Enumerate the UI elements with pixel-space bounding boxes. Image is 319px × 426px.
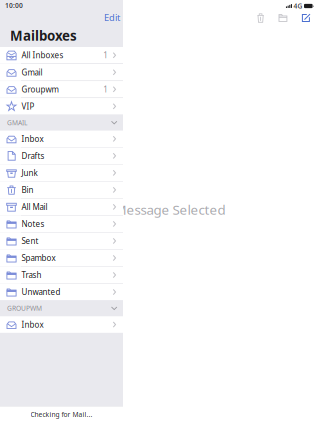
staticText: Drafts	[21, 150, 44, 161]
staticText: Groupwm	[21, 84, 58, 95]
staticText: Notes	[21, 219, 44, 229]
button[interactable]: All Inboxes	[0, 47, 123, 63]
staticText: GROUPWM	[7, 304, 42, 313]
staticText: Inbox	[21, 133, 43, 144]
button[interactable]: Sent	[0, 233, 123, 249]
staticText: Sent	[21, 236, 38, 246]
button[interactable]: Compose	[302, 12, 310, 24]
staticText: 1	[103, 50, 108, 60]
staticText: Spambox	[21, 253, 55, 263]
staticText: Edit	[104, 11, 120, 24]
button[interactable]: Spambox	[0, 250, 123, 266]
staticText: 4G	[293, 2, 302, 10]
button[interactable]: Delete	[257, 11, 264, 25]
staticText: 1	[103, 84, 108, 95]
staticText: No Message Selected	[93, 201, 225, 218]
button[interactable]: Unwanted	[0, 284, 123, 300]
staticText: Junk	[21, 168, 37, 178]
button[interactable]: Bin	[0, 182, 123, 198]
button[interactable]: VIP	[0, 98, 123, 115]
staticText: Inbox	[21, 319, 43, 330]
staticText: Checking for Mail...	[30, 410, 92, 419]
staticText: Bin	[21, 185, 33, 195]
staticText: All Inboxes	[21, 50, 63, 60]
button[interactable]: Gmail	[0, 64, 123, 80]
staticText: All Mail	[21, 202, 47, 212]
staticText: 10:00	[5, 1, 23, 10]
button[interactable]: Notes	[0, 216, 123, 232]
staticText: GMAIL	[7, 118, 27, 127]
staticText: Trash	[21, 270, 41, 280]
button[interactable]: Drafts	[0, 148, 123, 164]
button[interactable]: Edit	[99, 9, 123, 26]
staticText: Unwanted	[21, 287, 60, 297]
button[interactable]: Move to Folder	[278, 12, 287, 24]
staticText: Mailboxes	[10, 27, 77, 44]
button[interactable]: Inbox	[0, 131, 123, 147]
button[interactable]: Junk	[0, 165, 123, 181]
button[interactable]: Trash	[0, 267, 123, 283]
button[interactable]: Groupwm	[0, 81, 123, 97]
staticText: Gmail	[21, 67, 42, 78]
staticText: VIP	[21, 101, 34, 112]
button[interactable]: Inbox	[0, 316, 123, 333]
button[interactable]: All Mail	[0, 199, 123, 215]
